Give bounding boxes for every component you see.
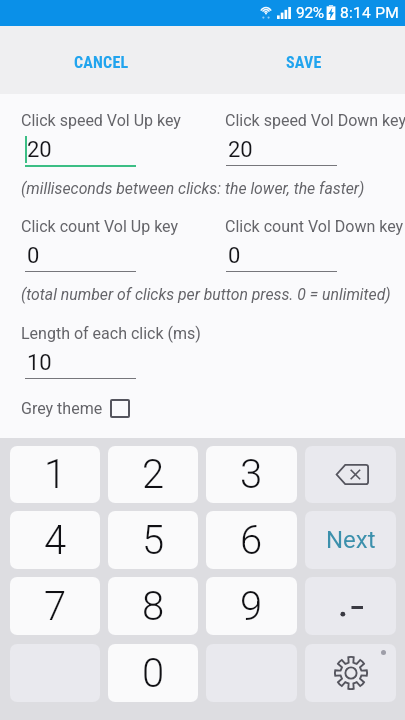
- staticText: SAVE: [286, 53, 322, 72]
- button[interactable]: Next: [305, 511, 396, 569]
- button[interactable]: 3: [206, 446, 297, 503]
- staticText: 0: [142, 650, 165, 697]
- button[interactable]: SAVE: [202, 26, 405, 94]
- staticText: Click count Vol Down key: [225, 217, 404, 236]
- staticText: 1: [44, 451, 67, 498]
- staticText: 7: [44, 583, 67, 630]
- button[interactable]: 2: [108, 446, 198, 503]
- button[interactable]: 1: [10, 446, 100, 503]
- staticText: Click speed Vol Up key: [21, 111, 181, 130]
- button[interactable]: 6: [206, 511, 297, 569]
- staticText: 10: [27, 350, 52, 376]
- staticText: 8: [142, 583, 165, 630]
- button[interactable]: Backspace: [305, 446, 396, 503]
- button[interactable]: 5: [108, 511, 198, 569]
- staticText: Click count Vol Up key: [21, 217, 179, 236]
- staticText: 5: [142, 517, 165, 564]
- staticText: Click speed Vol Down key: [225, 111, 405, 130]
- staticText: 0: [228, 243, 241, 269]
- button[interactable]: Keyboard settings: [305, 644, 396, 702]
- staticText: (milliseconds between clicks: the lower,…: [21, 179, 365, 198]
- staticText: 9: [240, 583, 263, 630]
- staticText: 2: [142, 451, 165, 498]
- staticText: 20: [228, 137, 253, 163]
- button[interactable]: CANCEL: [0, 26, 202, 94]
- staticText: Next: [326, 526, 376, 554]
- button[interactable]: 4: [10, 511, 100, 569]
- staticText: 0: [27, 243, 40, 269]
- staticText: 4: [44, 517, 67, 564]
- staticText: 3: [240, 451, 263, 498]
- button[interactable]: Period: [305, 577, 396, 635]
- staticText: Grey theme: [21, 399, 103, 418]
- staticText: 20: [27, 137, 52, 163]
- button[interactable]: 0: [108, 644, 198, 702]
- staticText: 8:14 PM: [340, 4, 400, 22]
- staticText: 6: [240, 517, 263, 564]
- staticText: CANCEL: [74, 53, 129, 72]
- button[interactable]: 8: [108, 577, 198, 635]
- staticText: 92%: [296, 4, 324, 22]
- staticText: (total number of clicks per button press…: [21, 285, 391, 304]
- staticText: Length of each click (ms): [21, 324, 201, 343]
- button[interactable]: 9: [206, 577, 297, 635]
- button[interactable]: 7: [10, 577, 100, 635]
- button[interactable]: Grey theme: [21, 399, 130, 418]
